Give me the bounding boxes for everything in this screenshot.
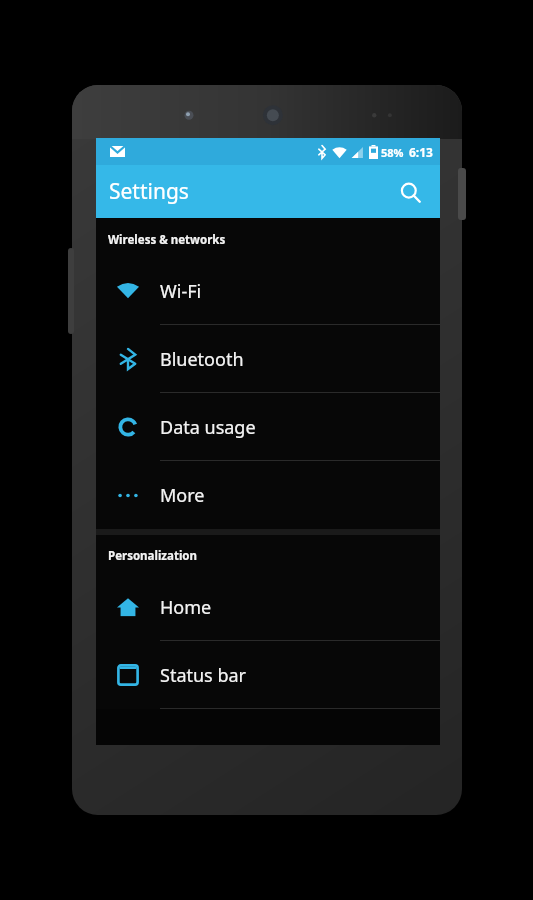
button[interactable]: Data usage xyxy=(96,393,440,461)
staticText: More xyxy=(160,483,205,508)
staticText: 6:13 xyxy=(409,144,433,160)
staticText: Personalization xyxy=(108,548,197,564)
button[interactable]: Search xyxy=(388,170,432,214)
staticText: Wireless & networks xyxy=(108,232,226,248)
staticText: Settings xyxy=(109,177,189,206)
staticText: 58% xyxy=(381,145,404,160)
button[interactable]: More xyxy=(96,461,440,529)
button[interactable]: Bluetooth xyxy=(96,325,440,393)
staticText: Status bar xyxy=(160,663,247,688)
button[interactable]: Home xyxy=(96,573,440,641)
staticText: Bluetooth xyxy=(160,347,244,372)
button[interactable]: Wi-Fi xyxy=(96,257,440,325)
staticText: Wi-Fi xyxy=(160,279,202,304)
staticText: Data usage xyxy=(160,415,256,440)
staticText: Home xyxy=(160,595,212,620)
button[interactable]: Status bar xyxy=(96,641,440,709)
